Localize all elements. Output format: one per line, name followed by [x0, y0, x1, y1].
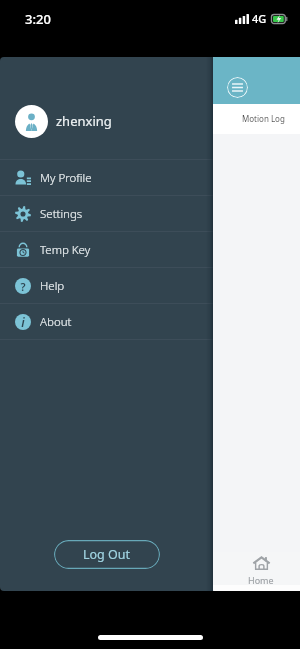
- button[interactable]: Temp Key: [0, 232, 213, 267]
- button[interactable]: i: [0, 304, 213, 339]
- staticText: Motion Log: [242, 113, 285, 124]
- button[interactable]: Log Out: [54, 540, 160, 569]
- staticText: Home: [248, 574, 274, 585]
- staticText: 3:20: [25, 10, 51, 28]
- staticText: Help: [40, 278, 65, 294]
- staticText: i: [21, 314, 25, 330]
- staticText: About: [40, 314, 72, 330]
- button[interactable]: Settings: [0, 196, 213, 231]
- button[interactable]: My Profile: [0, 160, 213, 195]
- staticText: zhenxing: [56, 112, 112, 130]
- staticText: Temp Key: [40, 242, 91, 258]
- staticText: My Profile: [40, 170, 92, 186]
- staticText: Log Out: [83, 546, 131, 563]
- staticText: ?: [20, 279, 26, 294]
- button[interactable]: Home: [248, 552, 274, 585]
- staticText: Settings: [40, 206, 83, 222]
- button[interactable]: ?: [0, 268, 213, 303]
- button[interactable]: Open navigation menu: [227, 77, 248, 98]
- staticText: 4G: [252, 11, 267, 26]
